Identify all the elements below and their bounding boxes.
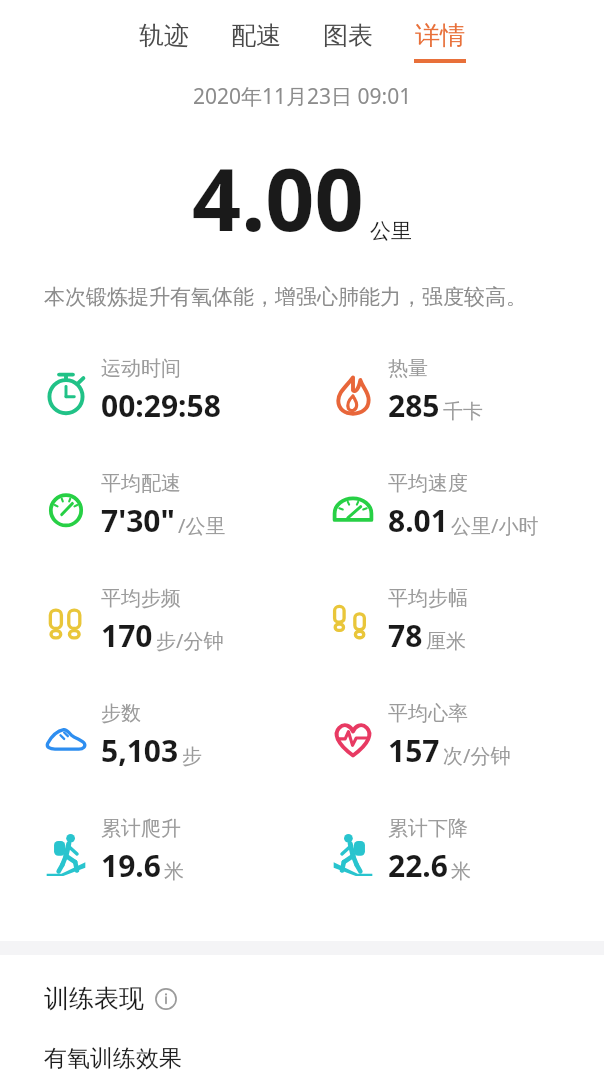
staticText: 2020年11月23日 09:01	[193, 82, 412, 111]
staticText: 公里	[370, 218, 412, 244]
staticText: 5,103	[101, 730, 179, 771]
button[interactable]: 累计下降	[302, 808, 604, 886]
staticText: 平均步频	[101, 586, 181, 611]
staticText: 步	[182, 744, 202, 769]
staticText: 图表	[323, 20, 373, 51]
staticText: 平均步幅	[388, 586, 468, 611]
staticText: 次/分钟	[443, 742, 511, 769]
button[interactable]: 配速	[222, 14, 290, 69]
staticText: 步数	[101, 701, 141, 726]
button[interactable]: 详情	[406, 14, 474, 69]
button[interactable]: 平均配速	[0, 463, 302, 541]
staticText: 285	[388, 385, 440, 426]
staticText: 训练表现	[44, 983, 144, 1014]
staticText: 配速	[231, 20, 281, 51]
staticText: 157	[388, 730, 440, 771]
staticText: 厘米	[426, 629, 466, 654]
button[interactable]: 平均步频	[0, 578, 302, 656]
button[interactable]: 平均速度	[302, 463, 604, 541]
staticText: 7'30"	[101, 500, 175, 541]
button[interactable]: 平均心率	[302, 693, 604, 771]
staticText: 热量	[388, 356, 428, 381]
staticText: 轨迹	[139, 20, 189, 51]
staticText: 运动时间	[101, 356, 181, 381]
staticText: 累计下降	[388, 816, 468, 841]
staticText: 步/分钟	[156, 627, 224, 654]
staticText: 22.6	[388, 845, 448, 886]
staticText: 平均配速	[101, 471, 181, 496]
staticText: 千卡	[443, 399, 483, 424]
button[interactable]: 热量	[302, 348, 604, 426]
staticText: 米	[451, 859, 471, 884]
other: Info	[154, 987, 178, 1011]
staticText: 4.00	[192, 139, 364, 256]
staticText: 19.6	[101, 845, 161, 886]
staticText: 平均速度	[388, 471, 468, 496]
button[interactable]: 图表	[314, 14, 382, 69]
staticText: /公里	[178, 512, 226, 539]
staticText: 8.01	[388, 500, 448, 541]
button[interactable]: 运动时间	[0, 348, 302, 426]
staticText: 78	[388, 615, 423, 656]
button[interactable]: 步数	[0, 693, 302, 771]
staticText: 米	[164, 859, 184, 884]
staticText: 详情	[415, 20, 465, 51]
staticText: 公里/小时	[451, 512, 539, 539]
staticText: 累计爬升	[101, 816, 181, 841]
staticText: 有氧训练效果	[44, 1044, 182, 1073]
button[interactable]: 轨迹	[130, 14, 198, 69]
staticText: 170	[101, 615, 153, 656]
staticText: 本次锻炼提升有氧体能，增强心肺能力，强度较高。	[44, 284, 527, 310]
button[interactable]: 训练表现	[0, 979, 604, 1018]
staticText: 平均心率	[388, 701, 468, 726]
staticText: 00:29:58	[101, 385, 221, 426]
button[interactable]: 平均步幅	[302, 578, 604, 656]
button[interactable]: 累计爬升	[0, 808, 302, 886]
